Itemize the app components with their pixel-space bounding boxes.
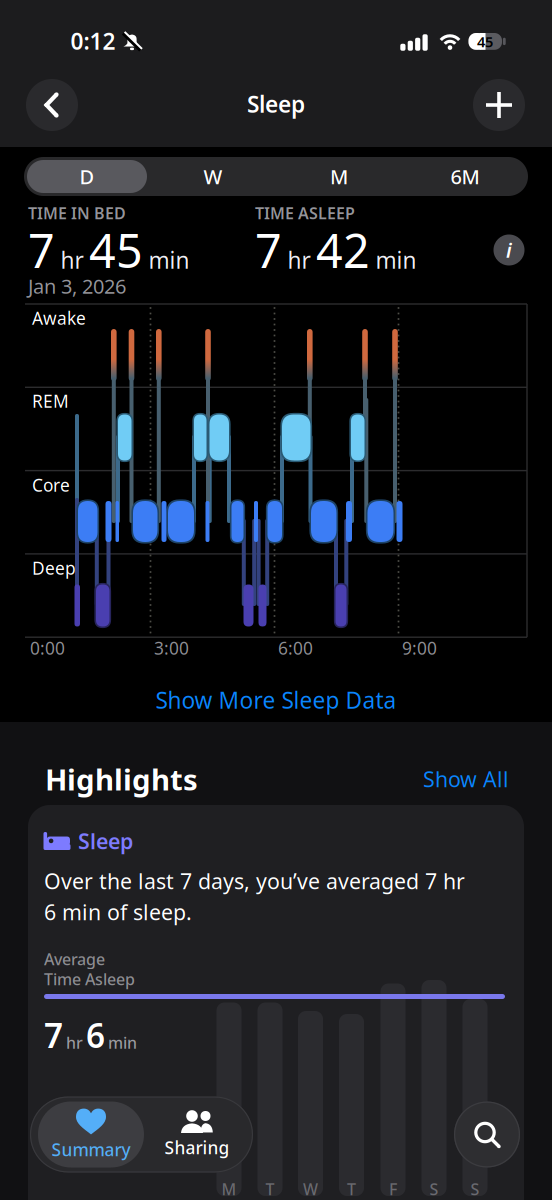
staticText: T — [347, 1178, 356, 1200]
staticText: Highlights — [45, 759, 198, 798]
staticText: Awake — [32, 306, 86, 329]
staticText: Time Asleep — [44, 968, 135, 990]
staticText: 45 — [89, 219, 143, 281]
staticText: M — [221, 1178, 236, 1200]
staticText: Summary — [51, 1138, 130, 1161]
staticText: hr — [60, 245, 83, 275]
staticText: REM — [32, 389, 69, 412]
staticText: W — [303, 1178, 318, 1200]
staticText: 6:00 — [278, 636, 313, 659]
staticText: Sharing — [164, 1136, 229, 1159]
button[interactable]: Back — [26, 79, 78, 131]
staticText: TIME ASLEEP — [255, 202, 355, 224]
staticText: M — [330, 163, 348, 190]
staticText: T — [265, 1178, 274, 1200]
staticText: 6 min of sleep. — [44, 898, 192, 926]
staticText: hr — [287, 245, 310, 275]
staticText: S — [429, 1178, 438, 1200]
staticText: 0:00 — [30, 636, 65, 659]
staticText: Show More Sleep Data — [155, 685, 396, 715]
button[interactable]: Search — [454, 1101, 520, 1167]
button[interactable]: Show More Sleep Data — [155, 685, 396, 715]
staticText: Jan 3, 2026 — [28, 273, 126, 299]
staticText: Deep — [32, 556, 76, 579]
button[interactable]: About Sleep — [493, 234, 524, 265]
button[interactable]: Summary — [38, 1101, 144, 1167]
staticText: 0:12 — [70, 26, 115, 56]
button[interactable]: W — [150, 157, 276, 196]
button[interactable]: Add Data — [473, 79, 525, 131]
staticText: Sleep — [78, 827, 133, 855]
staticText: min — [375, 245, 416, 275]
button[interactable]: D — [27, 160, 147, 193]
staticText: 45 — [477, 32, 493, 51]
button[interactable]: 6M — [402, 157, 528, 196]
staticText: i — [506, 237, 512, 263]
staticText: 6M — [450, 163, 479, 190]
staticText: TIME IN BED — [28, 202, 126, 224]
staticText: 3:00 — [154, 636, 189, 659]
staticText: S — [470, 1178, 479, 1200]
staticText: 7 — [255, 219, 282, 281]
staticText: W — [203, 163, 222, 190]
staticText: Over the last 7 days, you’ve averaged 7 … — [44, 867, 465, 895]
button[interactable]: M — [276, 157, 402, 196]
staticText: 42 — [316, 219, 370, 281]
button[interactable]: Show All — [423, 765, 509, 793]
staticText: 7 — [44, 1013, 63, 1057]
staticText: 7 — [28, 219, 55, 281]
staticText: Show All — [423, 765, 509, 793]
staticText: Core — [32, 473, 70, 496]
staticText: hr — [66, 1032, 83, 1053]
staticText: 6 — [86, 1013, 105, 1057]
staticText: min — [148, 245, 189, 275]
staticText: 9:00 — [402, 636, 437, 659]
button[interactable]: Sharing — [147, 1101, 247, 1167]
staticText: Sleep — [247, 89, 305, 119]
staticText: D — [79, 163, 94, 190]
staticText: Average — [44, 948, 105, 970]
staticText: F — [389, 1178, 397, 1200]
staticText: min — [108, 1032, 137, 1053]
